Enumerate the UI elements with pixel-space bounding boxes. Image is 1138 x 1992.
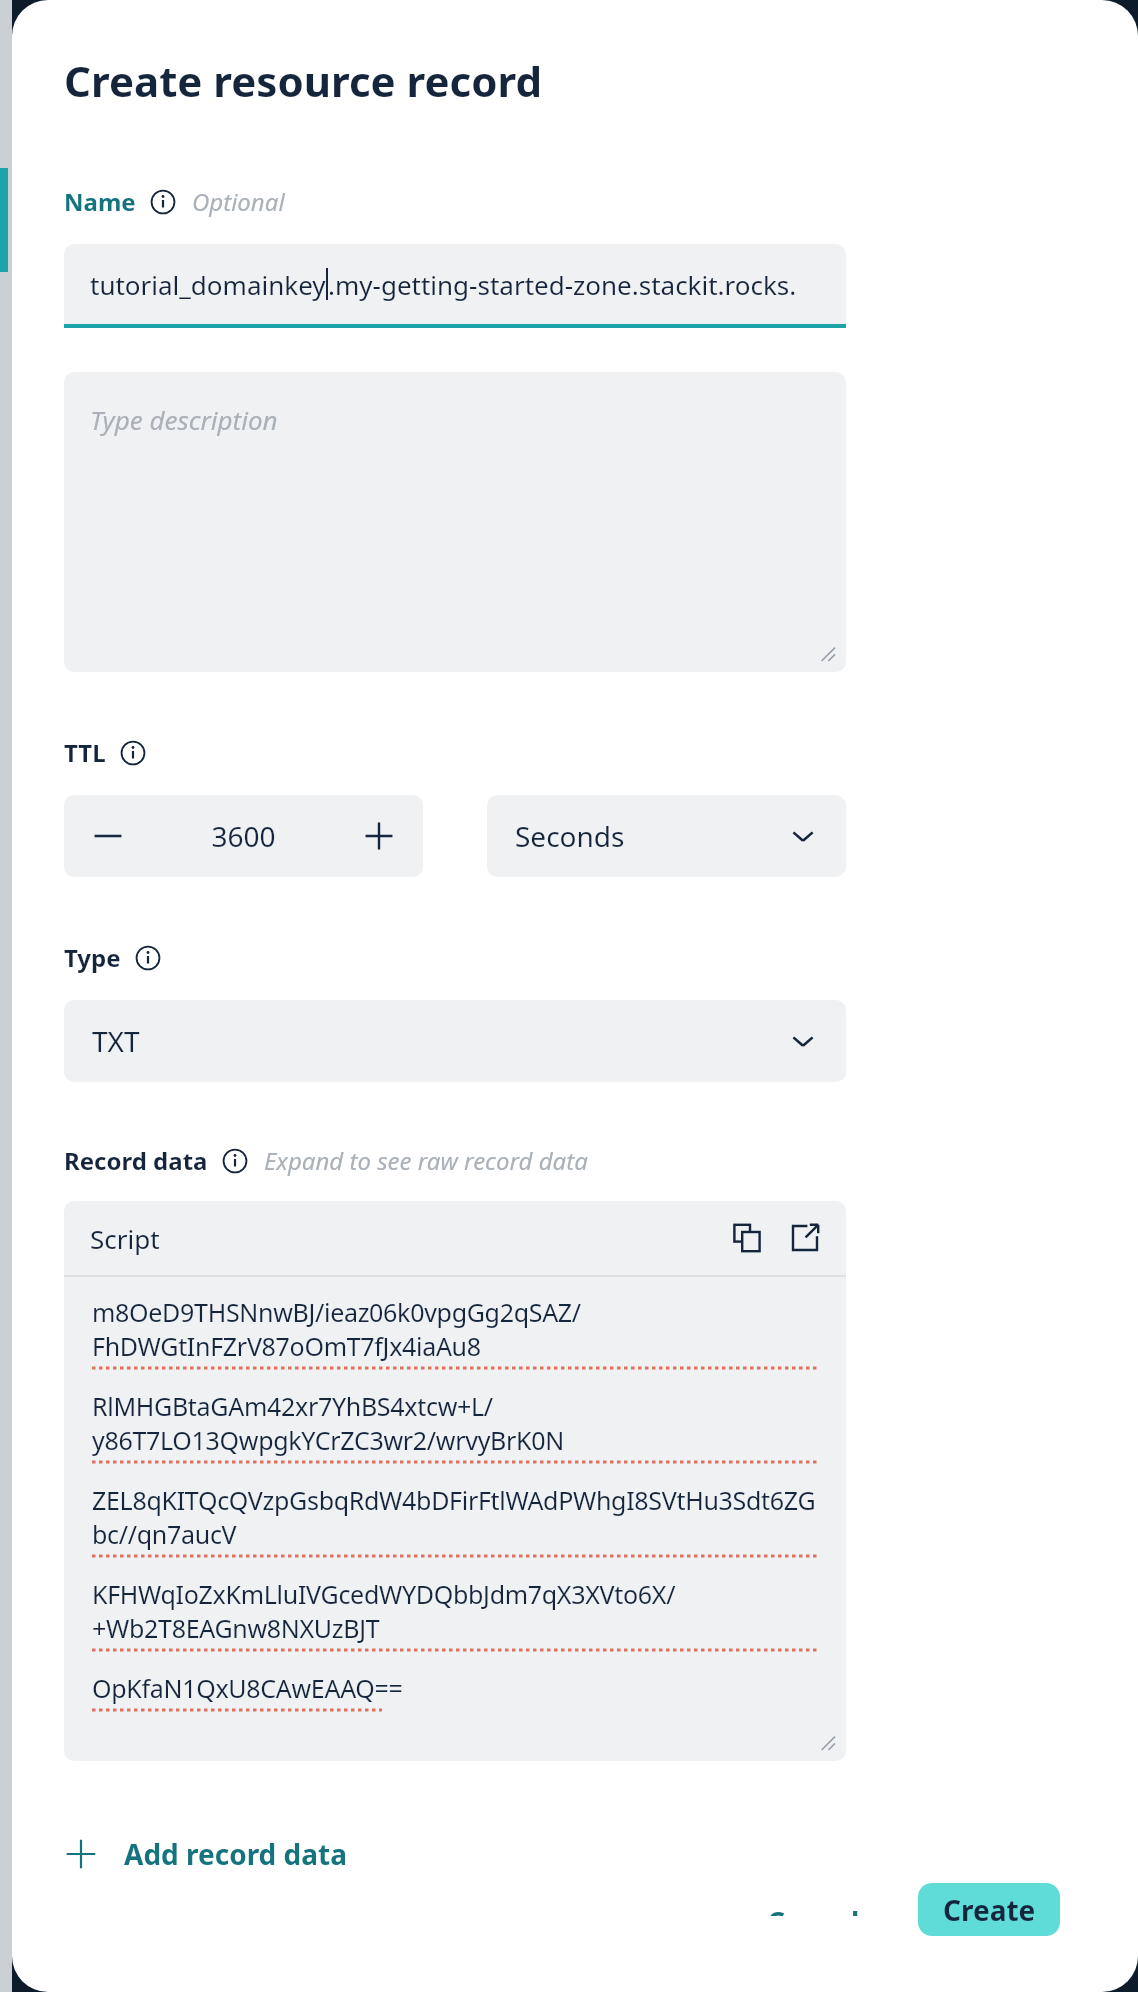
staticText: Create resource record [64, 52, 543, 109]
staticText: Cancel [767, 1903, 860, 1916]
staticText: Expand to see raw record data [264, 1144, 588, 1177]
button[interactable]: Create [918, 1883, 1060, 1936]
staticText: RlMHGBtaGAm42xr7YhBS4xtcw+L/y86T7LO13Qwp… [92, 1389, 818, 1457]
staticText: TXT [92, 1022, 140, 1060]
button[interactable]: Decrease TTL [92, 820, 124, 852]
staticText: Seconds [515, 817, 625, 855]
staticText: Add record data [124, 1835, 347, 1873]
staticText: Type description [90, 402, 278, 437]
staticText: .my-getting-started-zone.stackit.rocks. [328, 267, 797, 302]
staticText: TTL [64, 736, 106, 769]
button[interactable]: Increase TTL [363, 820, 395, 852]
button[interactable]: tutorial_domainkey [64, 244, 846, 324]
staticText: 3600 [124, 817, 363, 855]
staticText: KFHWqIoZxKmLluIVGcedWYDQbbJdm7qX3XVto6X/… [92, 1577, 818, 1645]
button[interactable]: Seconds [487, 795, 846, 877]
staticText: Type [64, 941, 121, 974]
staticText: tutorial_domainkey [90, 267, 326, 302]
button[interactable]: Type description [64, 372, 846, 672]
button[interactable]: Copy record data [732, 1223, 762, 1253]
staticText: OpKfaN1QxU8CAwEAAQ== [92, 1671, 403, 1705]
button[interactable]: Add record data [58, 1825, 353, 1883]
staticText: m8OeD9THSNnwBJ/ieaz06k0vpgGg2qSAZ/FhDWGt… [92, 1295, 818, 1363]
button[interactable]: Cancel [741, 1883, 886, 1936]
staticText: ZEL8qKITQcQVzpGsbqRdW4bDFirFtlWAdPWhgI8S… [92, 1483, 818, 1551]
staticText: Name [64, 185, 136, 218]
staticText: Record data [64, 1144, 208, 1177]
button[interactable]: TXT [64, 1000, 846, 1082]
staticText: Create [943, 1891, 1036, 1929]
staticText: Script [90, 1221, 160, 1256]
staticText: Optional [192, 185, 285, 218]
button[interactable]: Open record data [790, 1223, 820, 1253]
